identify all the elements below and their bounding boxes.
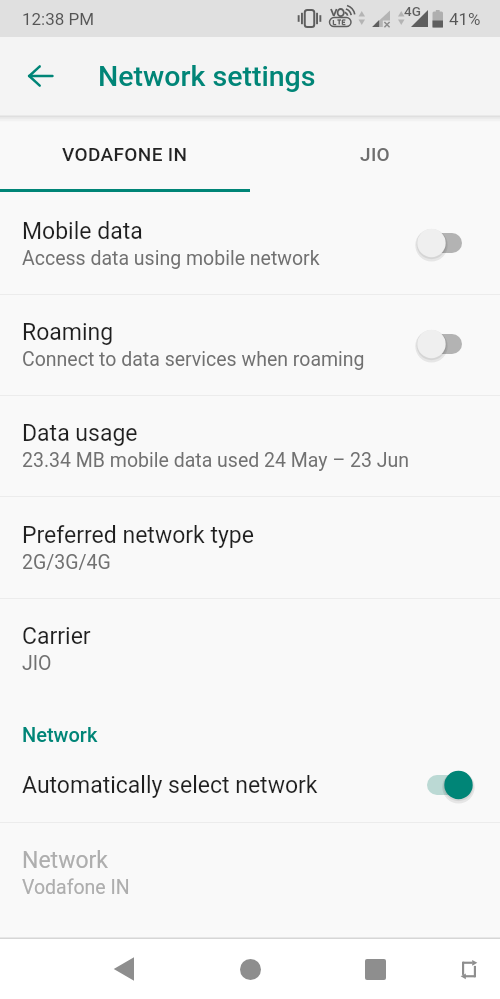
staticText: Network (22, 723, 98, 746)
staticText: Network settings (98, 60, 316, 93)
button[interactable]: VODAFONE IN (0, 115, 250, 193)
staticText: JIO (22, 652, 52, 675)
button[interactable]: Preferred network type (0, 497, 500, 598)
button[interactable]: Recent apps (345, 939, 405, 999)
button[interactable]: Network (0, 823, 500, 923)
staticText: 2G/3G/4G (22, 551, 111, 574)
button[interactable]: Automatically select network (0, 749, 500, 822)
staticText: Preferred network type (22, 522, 254, 549)
staticText: Mobile data (22, 218, 143, 245)
button[interactable]: Rotate screen (439, 939, 499, 999)
staticText: Carrier (22, 623, 91, 650)
staticText: Automatically select network (22, 772, 318, 799)
staticText: Access data using mobile network (22, 247, 320, 270)
button[interactable]: Mobile data (0, 193, 500, 294)
staticText: 23.34 MB mobile data used 24 May – 23 Ju… (22, 449, 410, 472)
button[interactable]: JIO (250, 115, 500, 193)
staticText: Vodafone IN (22, 876, 130, 899)
staticText: 12:38 PM (22, 9, 95, 29)
staticText: Roaming (22, 319, 114, 346)
staticText: Connect to data services when roaming (22, 348, 365, 371)
button[interactable]: Roaming (0, 295, 500, 395)
button[interactable]: Home (220, 939, 280, 999)
staticText: Data usage (22, 420, 138, 447)
button[interactable]: Carrier (0, 599, 500, 699)
staticText: 41% (449, 9, 481, 29)
button[interactable]: Back (16, 52, 64, 100)
button[interactable]: Back (94, 939, 154, 999)
staticText: VODAFONE IN (62, 143, 188, 165)
staticText: Network (22, 847, 108, 874)
button[interactable]: Data usage (0, 396, 500, 496)
staticText: 4G (404, 3, 421, 19)
staticText: JIO (360, 143, 391, 165)
